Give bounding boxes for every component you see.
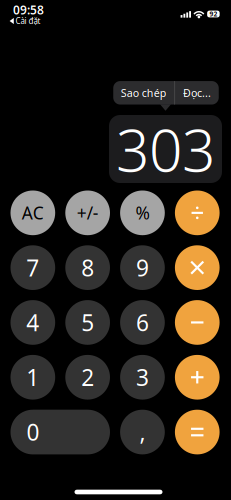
staticText: AC (22, 201, 44, 224)
button[interactable]: AC (10, 190, 55, 235)
staticText: 7 (26, 253, 39, 283)
button[interactable]: % (120, 190, 165, 235)
button[interactable]: 7 (10, 245, 55, 290)
staticText: 92 (209, 10, 217, 18)
staticText: % (135, 201, 149, 224)
staticText: , (139, 417, 145, 447)
staticText: 6 (136, 307, 149, 337)
button[interactable]: Plus (175, 355, 220, 400)
button[interactable]: Equals (175, 410, 220, 454)
button[interactable]: 8 (65, 245, 110, 290)
staticText: 2 (81, 362, 94, 392)
staticText: Cài đặt (15, 16, 40, 26)
button[interactable]: 9 (120, 245, 165, 290)
button[interactable]: , (120, 410, 165, 454)
button[interactable]: Cài đặt (10, 16, 40, 26)
staticText: 0 (26, 417, 39, 447)
staticText: 303 (116, 110, 215, 188)
button[interactable]: 0 (10, 410, 110, 454)
button[interactable]: 5 (65, 300, 110, 345)
button[interactable]: 4 (10, 300, 55, 345)
staticText: +/- (77, 201, 99, 224)
staticText: Đọc... (183, 86, 211, 100)
button[interactable]: Đọc... (175, 81, 219, 104)
button[interactable]: 3 (120, 355, 165, 400)
button[interactable]: 1 (10, 355, 55, 400)
staticText: 1 (26, 362, 39, 392)
staticText: 4 (26, 307, 39, 337)
button[interactable]: Multiply (175, 245, 220, 290)
staticText: 3 (136, 362, 149, 392)
button[interactable]: Divide (175, 190, 220, 235)
staticText: Sao chép (121, 86, 167, 100)
button[interactable]: 2 (65, 355, 110, 400)
staticText: 5 (81, 307, 94, 337)
button[interactable]: Minus (175, 300, 220, 345)
button[interactable]: 303 (109, 115, 222, 183)
staticText: 8 (81, 253, 94, 283)
staticText: 09:58 (13, 2, 44, 18)
button[interactable]: +/- (65, 190, 110, 235)
button[interactable]: 6 (120, 300, 165, 345)
button[interactable]: Sao chép (113, 81, 174, 104)
staticText: 9 (136, 253, 149, 283)
